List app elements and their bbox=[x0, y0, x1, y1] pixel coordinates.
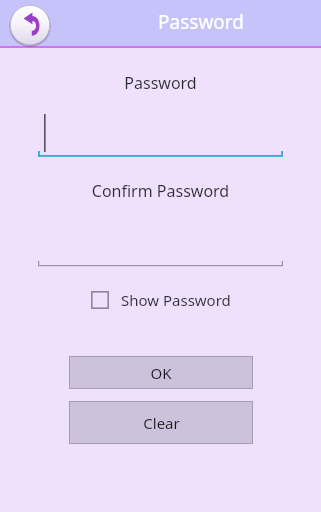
button[interactable] bbox=[0, 112, 321, 158]
staticText: Show Password bbox=[121, 290, 231, 310]
staticText: OK bbox=[150, 363, 172, 383]
button[interactable]: Back bbox=[8, 3, 52, 47]
staticText: Password bbox=[158, 9, 244, 35]
button[interactable]: Clear bbox=[69, 401, 253, 444]
staticText: Confirm Password bbox=[0, 180, 321, 202]
staticText: Clear bbox=[143, 413, 180, 433]
button[interactable]: OK bbox=[69, 356, 253, 389]
button[interactable]: Show Password bbox=[87, 288, 235, 312]
staticText: Password bbox=[0, 72, 321, 94]
button[interactable] bbox=[0, 226, 321, 268]
